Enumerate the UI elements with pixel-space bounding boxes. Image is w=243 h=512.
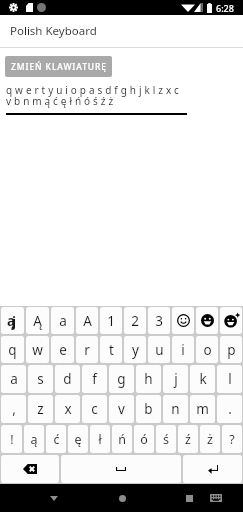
staticText: ż bbox=[207, 431, 213, 448]
button[interactable]: k bbox=[190, 365, 215, 393]
button[interactable]: t bbox=[100, 336, 122, 363]
staticText: ł bbox=[98, 431, 102, 448]
button[interactable]: Emoji sparkle bbox=[220, 307, 242, 334]
staticText: c bbox=[91, 400, 98, 418]
button[interactable]: Emoji filled bbox=[196, 307, 218, 334]
button[interactable]: Language bbox=[1, 307, 24, 334]
button[interactable]: g bbox=[109, 365, 134, 393]
button[interactable]: m bbox=[190, 395, 215, 423]
button[interactable]: 1 bbox=[100, 307, 122, 334]
button[interactable]: Space bbox=[61, 455, 181, 483]
staticText: f bbox=[92, 370, 97, 388]
button[interactable]: d bbox=[55, 365, 80, 393]
staticText: 2 bbox=[131, 312, 139, 330]
button[interactable]: Backspace bbox=[1, 455, 59, 483]
button[interactable]: ł bbox=[90, 425, 110, 453]
staticText: 1 bbox=[107, 312, 115, 330]
button[interactable]: ę bbox=[68, 425, 88, 453]
staticText: b bbox=[144, 400, 153, 418]
button[interactable]: z bbox=[28, 395, 53, 423]
staticText: h bbox=[144, 370, 153, 388]
button[interactable]: . bbox=[217, 395, 242, 423]
staticText: Ą bbox=[33, 312, 42, 330]
button[interactable]: v bbox=[109, 395, 134, 423]
button[interactable]: p bbox=[220, 336, 242, 363]
button[interactable]: ć bbox=[46, 425, 66, 453]
staticText: o bbox=[203, 341, 212, 359]
button[interactable]: A bbox=[76, 307, 98, 334]
staticText: y bbox=[132, 341, 139, 359]
button[interactable]: a bbox=[51, 307, 74, 334]
button[interactable]: j bbox=[163, 365, 188, 393]
button[interactable]: Ą bbox=[26, 307, 49, 334]
staticText: q bbox=[8, 341, 17, 359]
staticText: . bbox=[228, 400, 232, 418]
button[interactable]: x bbox=[55, 395, 80, 423]
button[interactable]: l bbox=[217, 365, 242, 393]
button[interactable]: ą bbox=[24, 425, 44, 453]
staticText: a bbox=[10, 370, 18, 388]
button[interactable]: q bbox=[1, 336, 24, 363]
staticText: d bbox=[63, 370, 72, 388]
staticText: j bbox=[174, 370, 178, 388]
staticText: v bbox=[118, 400, 125, 418]
staticText: u bbox=[155, 341, 164, 359]
button[interactable]: , bbox=[1, 395, 26, 423]
button[interactable]: ś bbox=[156, 425, 176, 453]
button[interactable]: Switch keyboard bbox=[203, 484, 229, 512]
button[interactable]: Enter bbox=[183, 455, 242, 483]
button[interactable]: r bbox=[76, 336, 98, 363]
staticText: ? bbox=[229, 431, 235, 448]
button[interactable]: 3 bbox=[148, 307, 170, 334]
staticText: t bbox=[109, 341, 114, 359]
staticText: k bbox=[199, 370, 207, 388]
button[interactable]: Emoji bbox=[172, 307, 194, 334]
button[interactable]: w bbox=[26, 336, 49, 363]
staticText: ZMIEŃ KLAWIATURĘ bbox=[11, 61, 107, 73]
button[interactable]: a bbox=[1, 365, 26, 393]
button[interactable]: e bbox=[51, 336, 74, 363]
button[interactable]: b bbox=[136, 395, 161, 423]
staticText: z bbox=[37, 400, 44, 418]
staticText: r bbox=[84, 341, 90, 359]
staticText: ! bbox=[10, 431, 14, 448]
button[interactable]: o bbox=[196, 336, 218, 363]
staticText: w bbox=[32, 341, 43, 359]
button[interactable]: f bbox=[82, 365, 107, 393]
staticText: qwertyuiopasdfghjklzxcvbnmąćęłńóśźż bbox=[6, 83, 187, 108]
button[interactable]: i bbox=[172, 336, 194, 363]
staticText: ś bbox=[163, 431, 169, 448]
staticText: x bbox=[64, 400, 72, 418]
button[interactable]: ó bbox=[134, 425, 154, 453]
button[interactable]: c bbox=[82, 395, 107, 423]
staticText: A bbox=[83, 312, 92, 330]
staticText: j bbox=[12, 313, 17, 331]
staticText: ą bbox=[30, 431, 38, 448]
button[interactable]: s bbox=[28, 365, 53, 393]
button[interactable]: 2 bbox=[124, 307, 146, 334]
button[interactable]: ń bbox=[112, 425, 132, 453]
button[interactable]: n bbox=[163, 395, 188, 423]
staticText: ę bbox=[74, 431, 82, 448]
staticText: 6:28 bbox=[216, 2, 234, 14]
button[interactable]: ź bbox=[178, 425, 198, 453]
staticText: g bbox=[117, 370, 126, 388]
button[interactable]: h bbox=[136, 365, 161, 393]
staticText: Polish Keyboard bbox=[10, 23, 97, 39]
button[interactable]: ! bbox=[1, 425, 22, 453]
button[interactable]: Hide keyboard bbox=[32, 484, 76, 512]
button[interactable]: ZMIEŃ KLAWIATURĘ bbox=[5, 56, 112, 77]
button[interactable]: ? bbox=[222, 425, 242, 453]
staticText: , bbox=[12, 400, 16, 418]
staticText: ź bbox=[185, 431, 191, 448]
staticText: e bbox=[59, 341, 67, 359]
staticText: s bbox=[37, 370, 44, 388]
button[interactable]: Home bbox=[100, 484, 144, 512]
staticText: m bbox=[196, 400, 209, 418]
button[interactable]: Recents bbox=[167, 484, 211, 512]
staticText: n bbox=[171, 400, 180, 418]
button[interactable]: u bbox=[148, 336, 170, 363]
staticText: i bbox=[181, 341, 185, 359]
button[interactable]: y bbox=[124, 336, 146, 363]
button[interactable]: ż bbox=[200, 425, 220, 453]
